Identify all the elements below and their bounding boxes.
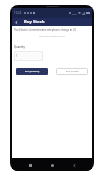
button[interactable]: Back [13, 19, 19, 25]
button[interactable]: Recent apps [26, 161, 34, 169]
staticText: Buy (Wallet) [66, 70, 79, 73]
staticText: You Electric Limited make telephone char… [14, 28, 77, 32]
staticText: select the quantity to buy [12, 35, 92, 38]
staticText: Buy (Trading) [25, 70, 40, 73]
staticText: 1 [16, 54, 18, 58]
button[interactable]: Buy (Wallet) [56, 68, 88, 75]
button[interactable]: Buy (Trading) [16, 68, 48, 75]
staticText: Quantity [14, 45, 25, 49]
button[interactable]: Home [48, 161, 56, 169]
button[interactable]: Back [70, 161, 78, 169]
staticText: 10:24 [14, 11, 22, 15]
staticText: Buy Stock [24, 19, 45, 25]
staticText: 58% [72, 12, 77, 15]
button[interactable]: 1 [14, 51, 43, 61]
